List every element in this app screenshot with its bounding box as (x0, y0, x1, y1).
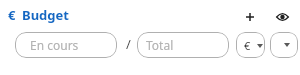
button[interactable]: Total (137, 32, 229, 58)
button[interactable]: € (8, 5, 69, 25)
staticText: Budget (22, 6, 69, 24)
staticText: Total (146, 37, 174, 53)
staticText: En cours (30, 37, 79, 53)
button[interactable]: Add (238, 5, 261, 28)
staticText: € (244, 38, 251, 53)
button[interactable]: En cours (15, 32, 117, 58)
staticText: € (8, 6, 16, 24)
button[interactable]: Show amounts (271, 5, 294, 28)
button[interactable]: More options (270, 32, 298, 58)
staticText: / (126, 35, 131, 53)
button[interactable]: Currency (236, 32, 265, 58)
